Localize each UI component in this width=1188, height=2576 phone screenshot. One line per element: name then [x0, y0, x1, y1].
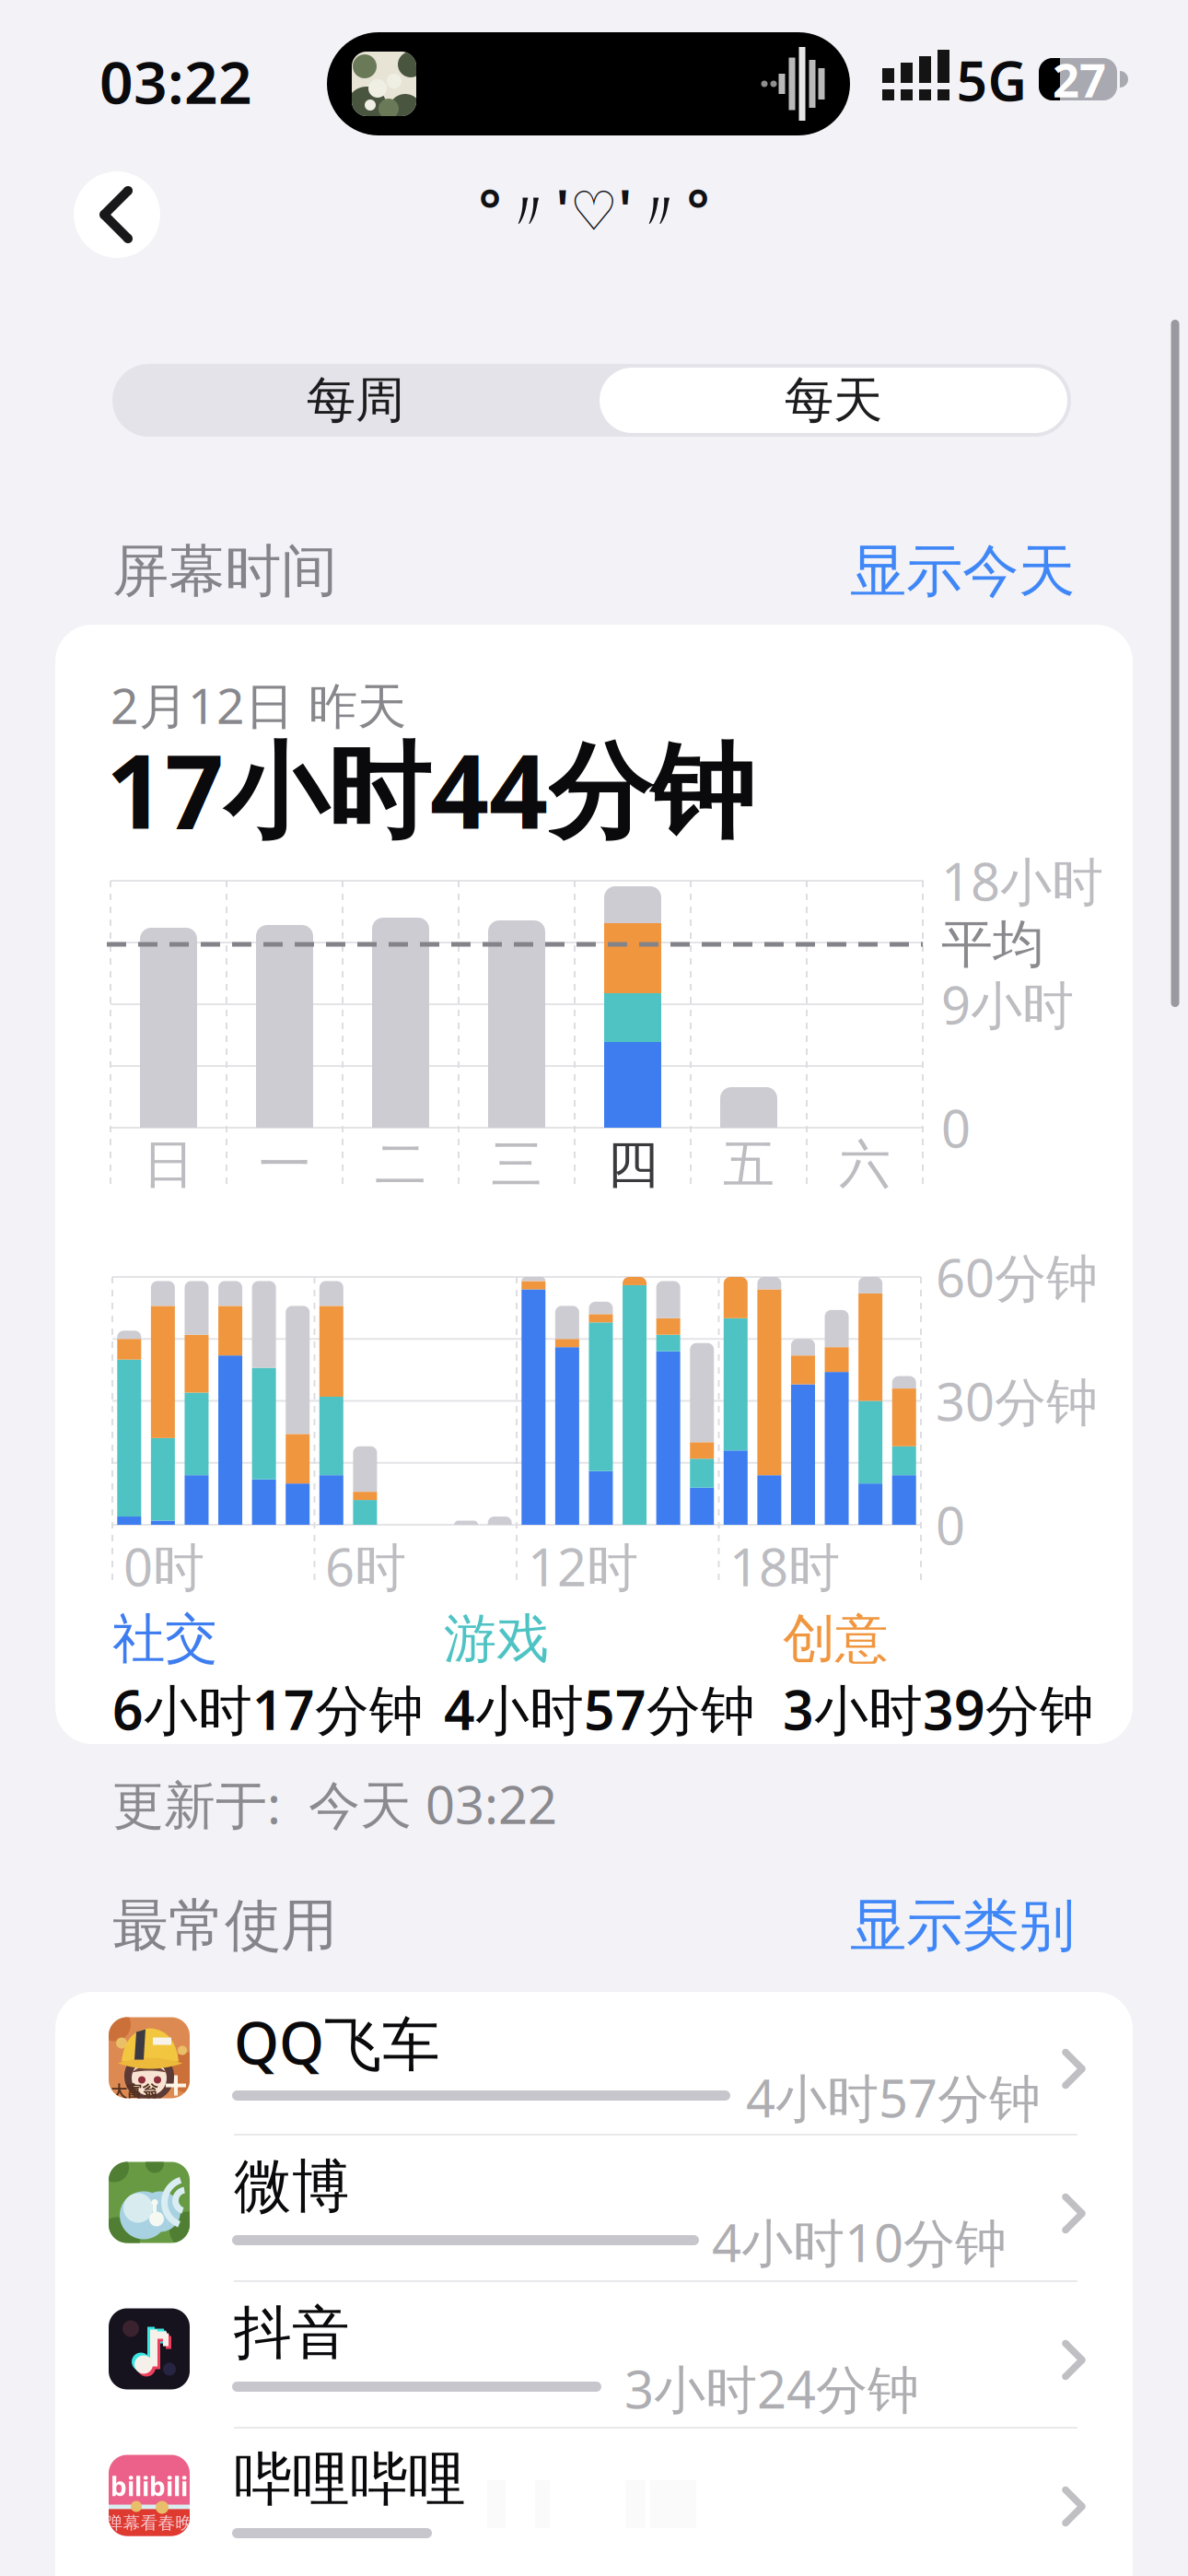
button[interactable]: 大富翁: [55, 1991, 1133, 2136]
staticText: 最常使用: [112, 1891, 337, 1960]
staticText: 4小时57分钟: [746, 2063, 1041, 2132]
staticText: 更新于: 今天 03:22: [112, 1770, 557, 1838]
staticText: 5G: [956, 44, 1027, 116]
staticText: 创意: [783, 1607, 888, 1671]
staticText: 屏幕时间: [112, 536, 337, 606]
staticText: 六: [839, 1133, 891, 1196]
staticText: 6时: [325, 1532, 406, 1601]
staticText: 显示今天: [850, 536, 1075, 606]
staticText: 显示类别: [850, 1891, 1075, 1960]
staticText: °〃'♡'〃°: [478, 173, 710, 245]
button[interactable]: 每周: [116, 364, 595, 437]
staticText: 2月12日 昨天: [111, 672, 406, 737]
button[interactable]: 抖音: [55, 2282, 1133, 2427]
button[interactable]: 微博: [55, 2136, 1133, 2280]
staticText: 平均: [941, 913, 1044, 976]
staticText: 哔哩哔哩: [234, 2444, 466, 2515]
staticText: 0: [941, 1093, 971, 1162]
staticText: 0时: [123, 1532, 204, 1601]
staticText: 60分钟: [936, 1243, 1098, 1311]
staticText: 二: [375, 1133, 426, 1196]
staticText: 6小时17分钟: [112, 1673, 424, 1745]
staticText: 三: [491, 1133, 542, 1196]
staticText: 03:22: [99, 42, 252, 120]
button[interactable]: 显示类别: [0, 0, 1188, 2576]
staticText: 社交: [112, 1607, 217, 1671]
staticText: 12时: [528, 1532, 638, 1601]
staticText: 游戏: [444, 1607, 549, 1671]
staticText: 一: [259, 1133, 310, 1196]
button[interactable]: Back: [74, 171, 160, 258]
button[interactable]: 每天: [600, 368, 1067, 433]
staticText: 抖音: [234, 2298, 350, 2369]
staticText: 3小时39分钟: [783, 1673, 1094, 1745]
staticText: bilibili: [111, 2469, 188, 2503]
staticText: 18时: [729, 1532, 840, 1601]
staticText: 每周: [307, 370, 404, 430]
staticText: 17小时44分钟: [106, 720, 754, 857]
staticText: 9小时: [941, 970, 1074, 1039]
button[interactable]: 显示今天: [0, 0, 1188, 2576]
staticText: 日: [143, 1133, 194, 1196]
staticText: 4小时10分钟: [712, 2208, 1007, 2276]
staticText: QQ飞车: [234, 2004, 440, 2081]
staticText: 18小时: [941, 847, 1103, 915]
staticText: 大富翁: [111, 2082, 158, 2102]
staticText: 27: [1053, 48, 1106, 110]
staticText: 五: [723, 1133, 775, 1196]
staticText: 30分钟: [936, 1367, 1098, 1435]
staticText: 微博: [234, 2151, 350, 2222]
staticText: 0: [936, 1491, 965, 1559]
button[interactable]: bilibili: [55, 2429, 1133, 2573]
staticText: 四: [607, 1133, 658, 1196]
staticText: 4小时57分钟: [444, 1673, 755, 1745]
staticText: 每天: [785, 370, 882, 430]
staticText: 弹幕看春晚: [105, 2512, 193, 2534]
staticText: 3小时24分钟: [624, 2354, 919, 2423]
